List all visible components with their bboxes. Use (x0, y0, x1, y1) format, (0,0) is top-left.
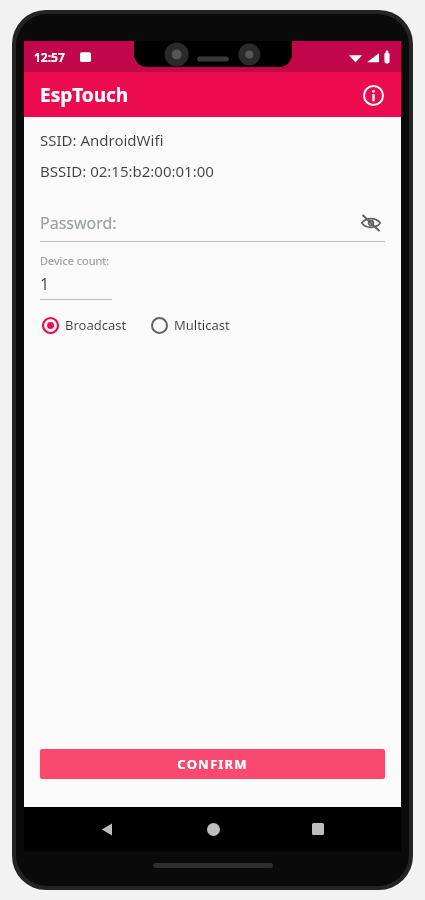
button[interactable]: Multicast (149, 314, 232, 336)
staticText: 1 (40, 273, 50, 295)
button[interactable]: Home (191, 807, 235, 851)
staticText: BSSID: 02:15:b2:00:01:00 (40, 161, 214, 181)
button[interactable]: Broadcast (40, 314, 129, 336)
button[interactable]: Recent apps (296, 807, 340, 851)
staticText: CONFIRM (177, 755, 248, 773)
button[interactable]: About (353, 75, 393, 115)
staticText: Password: (40, 212, 117, 234)
staticText: EspTouch (40, 82, 129, 108)
staticText: Broadcast (65, 316, 127, 334)
button[interactable]: Password: (40, 205, 385, 241)
button[interactable]: Back (85, 807, 129, 851)
staticText: Multicast (174, 316, 230, 334)
staticText: 12:57 (34, 49, 65, 65)
button[interactable]: 1 (40, 273, 112, 300)
button[interactable]: Toggle password visibility (357, 209, 385, 237)
staticText: Device count: (40, 253, 110, 268)
button[interactable]: CONFIRM (40, 749, 385, 779)
staticText: SSID: AndroidWifi (40, 130, 164, 150)
